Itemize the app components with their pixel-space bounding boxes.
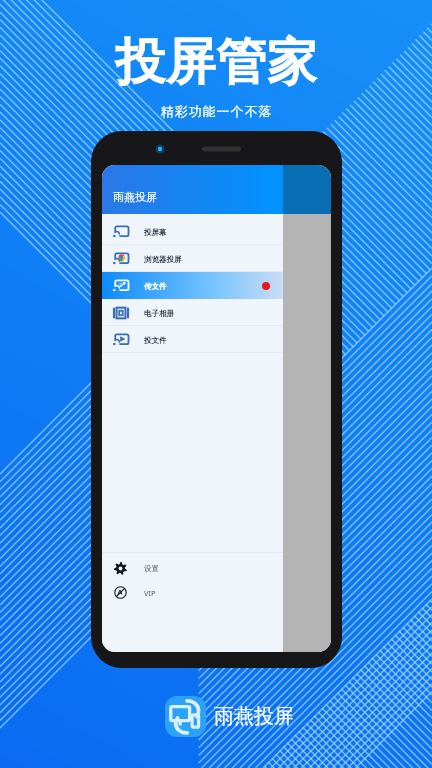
button[interactable]: 传文件 — [102, 272, 283, 299]
staticText: 投屏幕 — [144, 228, 167, 237]
staticText: 浏览器投屏 — [144, 255, 182, 264]
staticText: 雨燕投屏 — [113, 190, 157, 204]
staticText: 传文件 — [144, 282, 167, 291]
staticText: 电子相册 — [144, 309, 174, 318]
staticText: 雨燕投屏 — [214, 704, 294, 729]
button[interactable]: 浏览器投屏 — [102, 245, 283, 272]
staticText: 精彩功能一个不落 — [160, 103, 272, 119]
staticText: 设置 — [144, 564, 159, 573]
staticText: 投文件 — [144, 336, 167, 345]
button[interactable]: 设置 — [102, 556, 283, 580]
button[interactable]: 电子相册 — [102, 299, 283, 326]
staticText: 投屏管家 — [115, 31, 317, 94]
button[interactable]: VIP — [102, 580, 283, 604]
button[interactable]: 投文件 — [102, 326, 283, 353]
button[interactable]: 雨燕投屏 — [165, 696, 294, 737]
button[interactable]: 投屏幕 — [102, 218, 283, 245]
staticText: VIP — [144, 588, 156, 598]
